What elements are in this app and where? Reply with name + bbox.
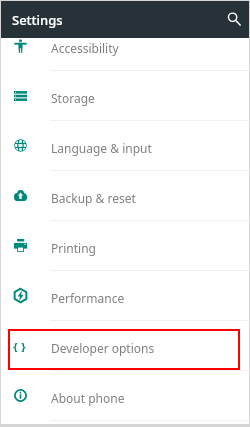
staticText: Developer options	[51, 340, 155, 356]
staticText: { }	[13, 339, 26, 352]
button[interactable]: Language & input	[0, 121, 250, 171]
staticText: Backup & reset	[51, 190, 136, 206]
staticText: Accessibility	[51, 40, 119, 56]
staticText: Performance	[51, 290, 125, 306]
button[interactable]: Storage	[0, 71, 250, 121]
button[interactable]: About phone	[0, 371, 250, 421]
button[interactable]: { }	[0, 321, 250, 371]
staticText: Settings	[12, 11, 63, 29]
button[interactable]: Accessibility	[0, 21, 250, 71]
staticText: Storage	[51, 90, 95, 106]
staticText: Printing	[51, 240, 96, 256]
button[interactable]: Performance	[0, 271, 250, 321]
button[interactable]: Backup & reset	[0, 171, 250, 221]
button[interactable]: Search	[221, 6, 247, 32]
button[interactable]: Printing	[0, 221, 250, 271]
staticText: Language & input	[51, 140, 152, 156]
staticText: About phone	[51, 390, 125, 406]
